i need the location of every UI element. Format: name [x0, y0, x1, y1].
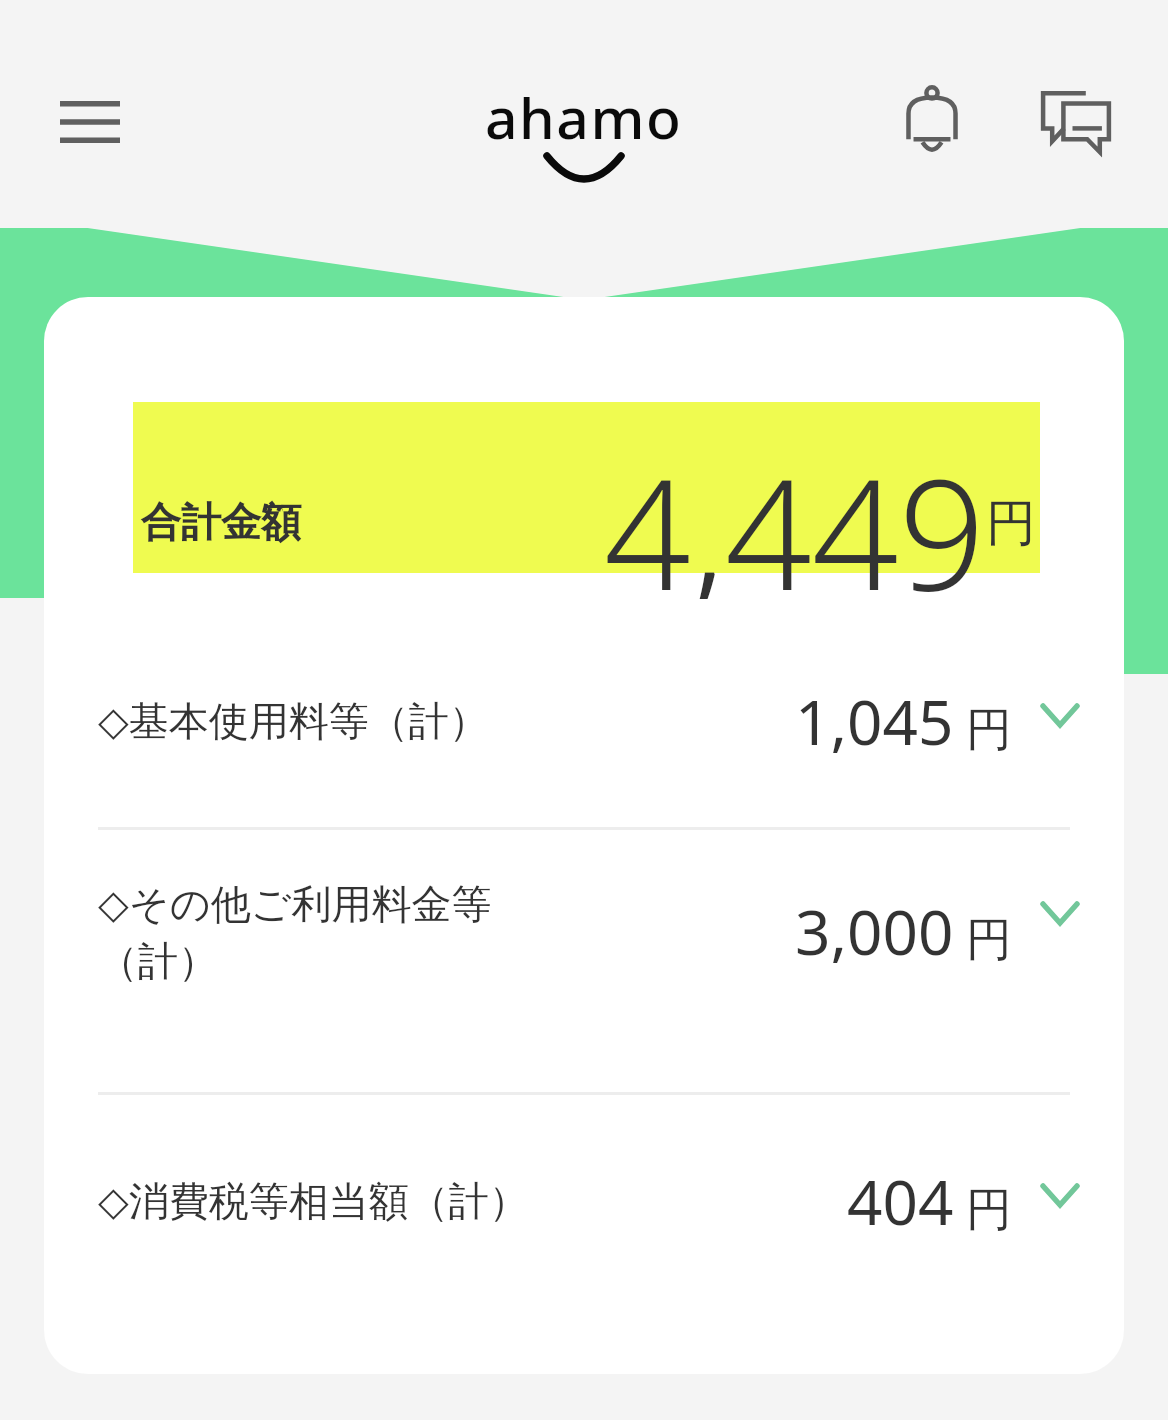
staticText: ahamo: [485, 78, 683, 156]
button[interactable]: ◇消費税等相当額（計）: [44, 1095, 1124, 1307]
staticText: 1,045: [795, 679, 954, 763]
staticText: ◇消費税等相当額（計）: [98, 1176, 529, 1226]
staticText: 円: [986, 492, 1036, 555]
button[interactable]: Notifications: [882, 68, 982, 176]
button[interactable]: Menu: [36, 74, 144, 170]
button[interactable]: ahamo: [0, 78, 1168, 176]
staticText: ◇その他ご利用料金等 （計）: [98, 879, 492, 987]
button[interactable]: ◇基本使用料等（計）: [44, 615, 1124, 827]
button[interactable]: ◇その他ご利用料金等 （計）: [44, 830, 1124, 1092]
staticText: 円: [966, 911, 1012, 969]
staticText: ◇基本使用料等（計）: [98, 696, 489, 746]
staticText: 円: [966, 701, 1012, 759]
staticText: 円: [966, 1181, 1012, 1239]
button[interactable]: Chat: [1022, 68, 1130, 176]
staticText: 合計金額: [141, 497, 301, 547]
staticText: 3,000: [795, 889, 954, 973]
staticText: 4,449: [604, 428, 986, 599]
staticText: 404: [847, 1159, 954, 1243]
